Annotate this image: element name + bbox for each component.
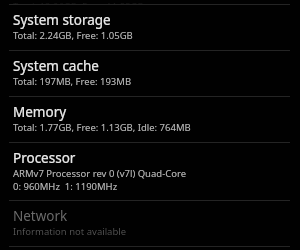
button[interactable]: Memory (0, 97, 300, 142)
button[interactable]: Network (0, 201, 300, 246)
staticText: Total: 197MB, Free: 193MB (13, 75, 132, 88)
button[interactable]: System cache (0, 51, 300, 96)
staticText: Network (13, 207, 68, 225)
staticText: Total: 1.77GB, Free: 1.13GB, Idle: 764MB (13, 121, 191, 134)
staticText: Processor (13, 149, 76, 167)
button[interactable]: Processor (0, 143, 300, 200)
staticText: Total: 13.06GB, Free: 11.55GB (13, 0, 144, 4)
staticText: System cache (13, 57, 99, 75)
staticText: Total: 2.24GB, Free: 1.05GB (13, 29, 133, 42)
staticText: System storage (13, 11, 111, 29)
staticText: Memory (13, 103, 67, 121)
staticText: 0: 960MHz 1: 1190MHz (13, 180, 118, 193)
staticText: ARMv7 Processor rev 0 (v7l) Quad-Core (13, 167, 187, 180)
button[interactable]: System storage (0, 5, 300, 50)
staticText: Information not available (13, 225, 127, 238)
